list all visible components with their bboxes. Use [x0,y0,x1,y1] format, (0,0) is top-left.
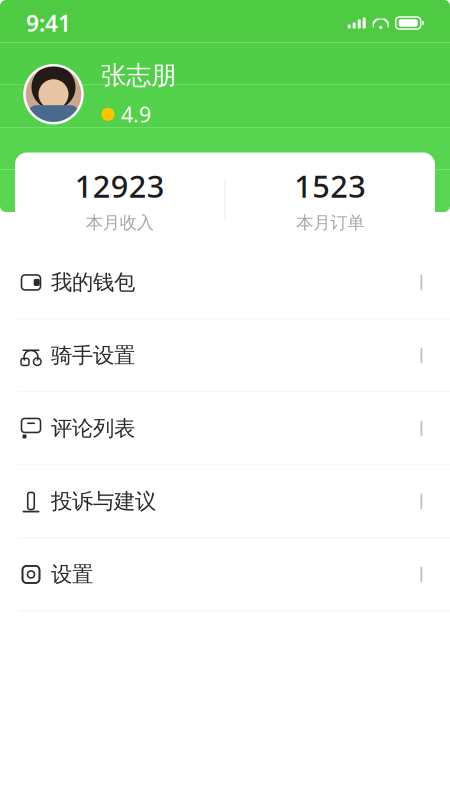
staticText: 投诉与建议 [51,488,156,514]
button[interactable]: 投诉与建议 [0,465,450,538]
button[interactable]: 骑手设置 [0,319,450,392]
staticText: 本月订单 [296,212,364,233]
staticText: 本月收入 [86,212,154,233]
button[interactable]: 设置 [0,538,450,611]
staticText: 骑手设置 [51,342,135,368]
staticText: 1523 [294,165,366,206]
staticText: 张志朋 [101,60,176,91]
staticText: 评论列表 [51,415,135,441]
button[interactable]: 我的钱包 [0,246,450,319]
staticText: 12923 [75,165,165,206]
staticText: 我的钱包 [51,269,135,295]
staticText: 4.9 [121,100,151,128]
staticText: 9:41 [26,8,71,38]
staticText: 设置 [51,561,93,587]
button[interactable]: 评论列表 [0,392,450,465]
button[interactable]: 张志朋 [0,60,450,128]
